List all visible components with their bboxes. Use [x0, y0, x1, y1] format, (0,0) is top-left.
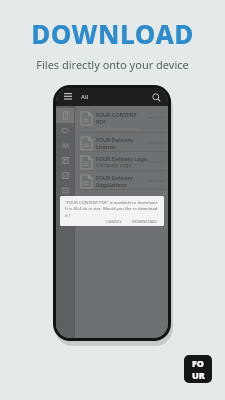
button[interactable]: Menu: [62, 91, 74, 103]
staticText: FOUR Delivery Regulations: [96, 174, 148, 188]
staticText: FOUR Delivery License: [96, 136, 148, 150]
staticText: FOUR CONTENT PDF: [96, 111, 148, 125]
button[interactable]: FOUR Delivery Regulations: [79, 171, 168, 190]
staticText: Available for download: [96, 126, 139, 131]
button[interactable]: Rail item 4: [56, 153, 74, 168]
staticText: Revision 1: [148, 140, 165, 145]
button[interactable]: Rail item 7: [56, 198, 74, 213]
staticText: All: [81, 93, 89, 101]
button[interactable]: Search: [150, 91, 162, 103]
staticText: DOWNLOAD: [31, 16, 194, 51]
staticText: Revision 1: [148, 115, 165, 120]
button[interactable]: Rail item 6: [56, 183, 74, 198]
button[interactable]: FOUR logo: [184, 355, 212, 383]
button[interactable]: CANCEL: [103, 218, 125, 224]
button[interactable]: Rail item 2: [56, 123, 74, 138]
button[interactable]: Rail item 5: [56, 168, 74, 183]
staticText: Files directly onto your device: [36, 57, 189, 72]
staticText: DOWNLOAD: [132, 219, 157, 223]
button[interactable]: Rail item 3: [56, 138, 74, 153]
staticText: It is 45.4 kb in size. Would you like to…: [65, 206, 160, 218]
staticText: Company Logo: [96, 162, 132, 169]
staticText: Revision 1: [148, 159, 165, 164]
button[interactable]: FOUR Delivery Logo: [79, 152, 168, 171]
staticText: UR: [192, 369, 205, 381]
staticText: FOUR Delivery Logo: [96, 155, 148, 162]
button[interactable]: Rail item 1: [56, 108, 74, 123]
button[interactable]: FOUR CONTENT PDF: [79, 108, 168, 133]
staticText: CANCEL: [106, 219, 122, 223]
button[interactable]: FOUR Delivery License: [79, 133, 168, 152]
button[interactable]: DOWNLOAD: [129, 218, 160, 224]
staticText: FO: [192, 357, 205, 369]
staticText: Revision 1: [148, 178, 165, 183]
staticText: "FOUR CONTENT PDF" is available to downl…: [65, 200, 159, 206]
